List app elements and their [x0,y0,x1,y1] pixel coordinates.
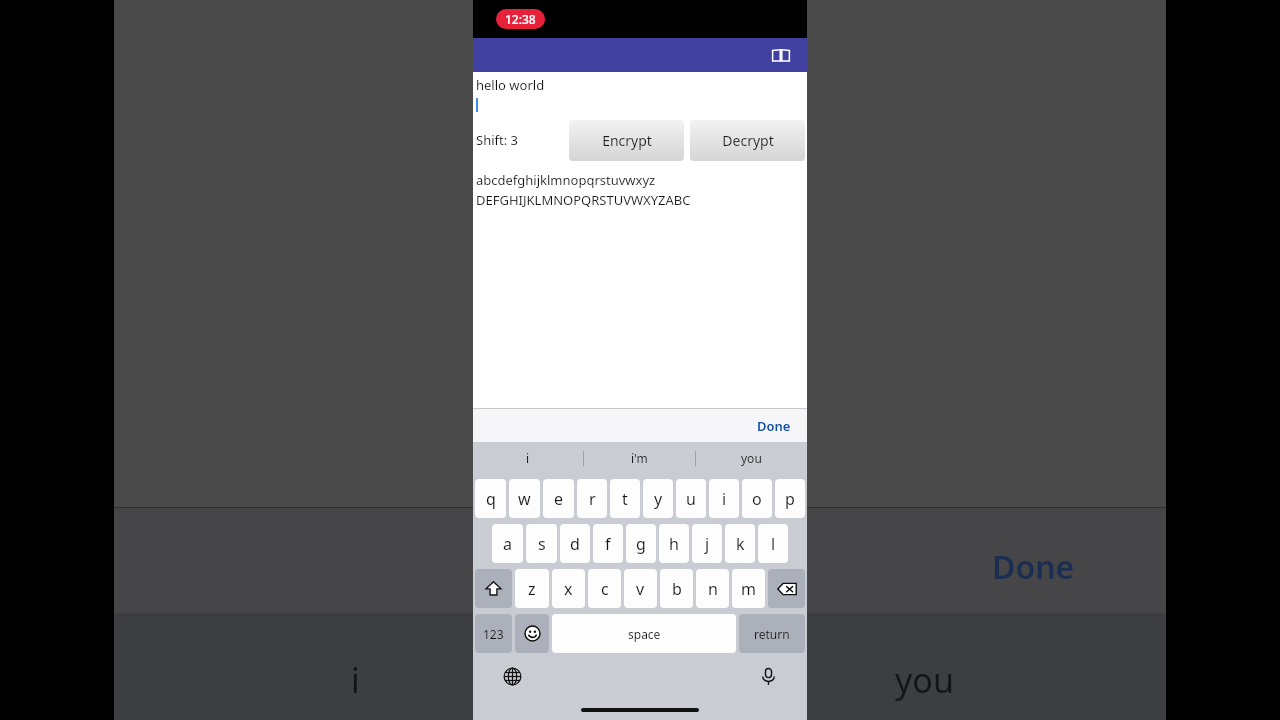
staticText: p [785,488,795,510]
button[interactable]: Change keyboard [501,665,523,687]
staticText: q [486,488,496,510]
button[interactable]: q [475,479,506,518]
staticText: v [636,578,645,600]
button[interactable]: i [709,479,739,518]
staticText: m [741,578,756,600]
button[interactable]: Done [741,411,807,441]
button[interactable]: Dictation [757,665,779,687]
staticText: 123 [483,626,504,642]
button[interactable]: h [659,524,689,563]
button[interactable]: u [676,479,706,518]
staticText: return [754,626,790,642]
staticText: Shift: 3 [476,131,518,149]
staticText: o [752,488,762,510]
button[interactable]: r [577,479,607,518]
button[interactable]: f [593,524,623,563]
button[interactable]: 123 [475,614,512,653]
staticText: b [672,578,682,600]
staticText: z [528,578,536,600]
button[interactable]: g [626,524,656,563]
button[interactable]: i'm [584,442,695,474]
button[interactable]: l [758,524,788,563]
button[interactable]: o [742,479,772,518]
staticText: t [622,488,628,510]
staticText: Done [992,545,1075,589]
button[interactable]: p [775,479,805,518]
button[interactable]: i [473,442,583,474]
staticText: n [708,578,718,600]
button[interactable]: space [552,614,736,653]
button[interactable]: Decrypt [690,120,805,161]
staticText: you [741,450,762,466]
staticText: 12:38 [505,11,536,27]
staticText: f [605,533,611,555]
button[interactable]: c [588,569,621,608]
staticText: y [654,488,663,510]
staticText: k [736,533,745,555]
button[interactable]: Encrypt [569,120,684,161]
staticText: hello world [476,76,545,94]
staticText: w [518,488,531,510]
staticText: u [686,488,696,510]
button[interactable]: a [492,524,523,563]
button[interactable]: t [610,479,640,518]
button[interactable]: return [739,614,805,653]
button[interactable]: s [526,524,557,563]
button[interactable]: e [543,479,574,518]
staticText: space [628,626,661,642]
staticText: i [351,657,360,703]
staticText: Decrypt [722,131,774,150]
staticText: j [705,533,710,555]
button[interactable]: x [552,569,585,608]
button[interactable]: j [692,524,722,563]
button[interactable]: v [624,569,657,608]
staticText: i'm [631,450,648,466]
staticText: Done [757,417,791,435]
staticText: c [601,578,609,600]
staticText: a [503,533,512,555]
button[interactable]: b [660,569,693,608]
button[interactable]: Emoji [515,614,549,653]
button[interactable]: n [696,569,729,608]
button[interactable]: d [560,524,590,563]
staticText: l [771,533,776,555]
button[interactable]: you [696,442,807,474]
staticText: r [589,488,596,510]
staticText: d [570,533,580,555]
staticText: s [538,533,546,555]
staticText: abcdefghijklmnopqrstuvwxyz [476,171,656,189]
staticText: i [526,450,530,466]
button[interactable]: Shift [475,569,512,608]
button[interactable]: k [725,524,755,563]
staticText: x [564,578,573,600]
button[interactable]: m [732,569,765,608]
staticText: h [669,533,679,555]
staticText: Encrypt [602,131,652,150]
staticText: i [722,488,727,510]
staticText: DEFGHIJKLMNOPQRSTUVWXYZABC [476,191,691,209]
button[interactable]: w [509,479,540,518]
button[interactable]: Backspace [768,569,805,608]
button[interactable]: 12:38 [496,9,545,29]
staticText: e [554,488,564,510]
button[interactable]: z [515,569,549,608]
button[interactable]: y [643,479,673,518]
staticText: g [636,533,646,555]
staticText: you [895,657,954,703]
button[interactable]: Dictionary [767,41,795,69]
